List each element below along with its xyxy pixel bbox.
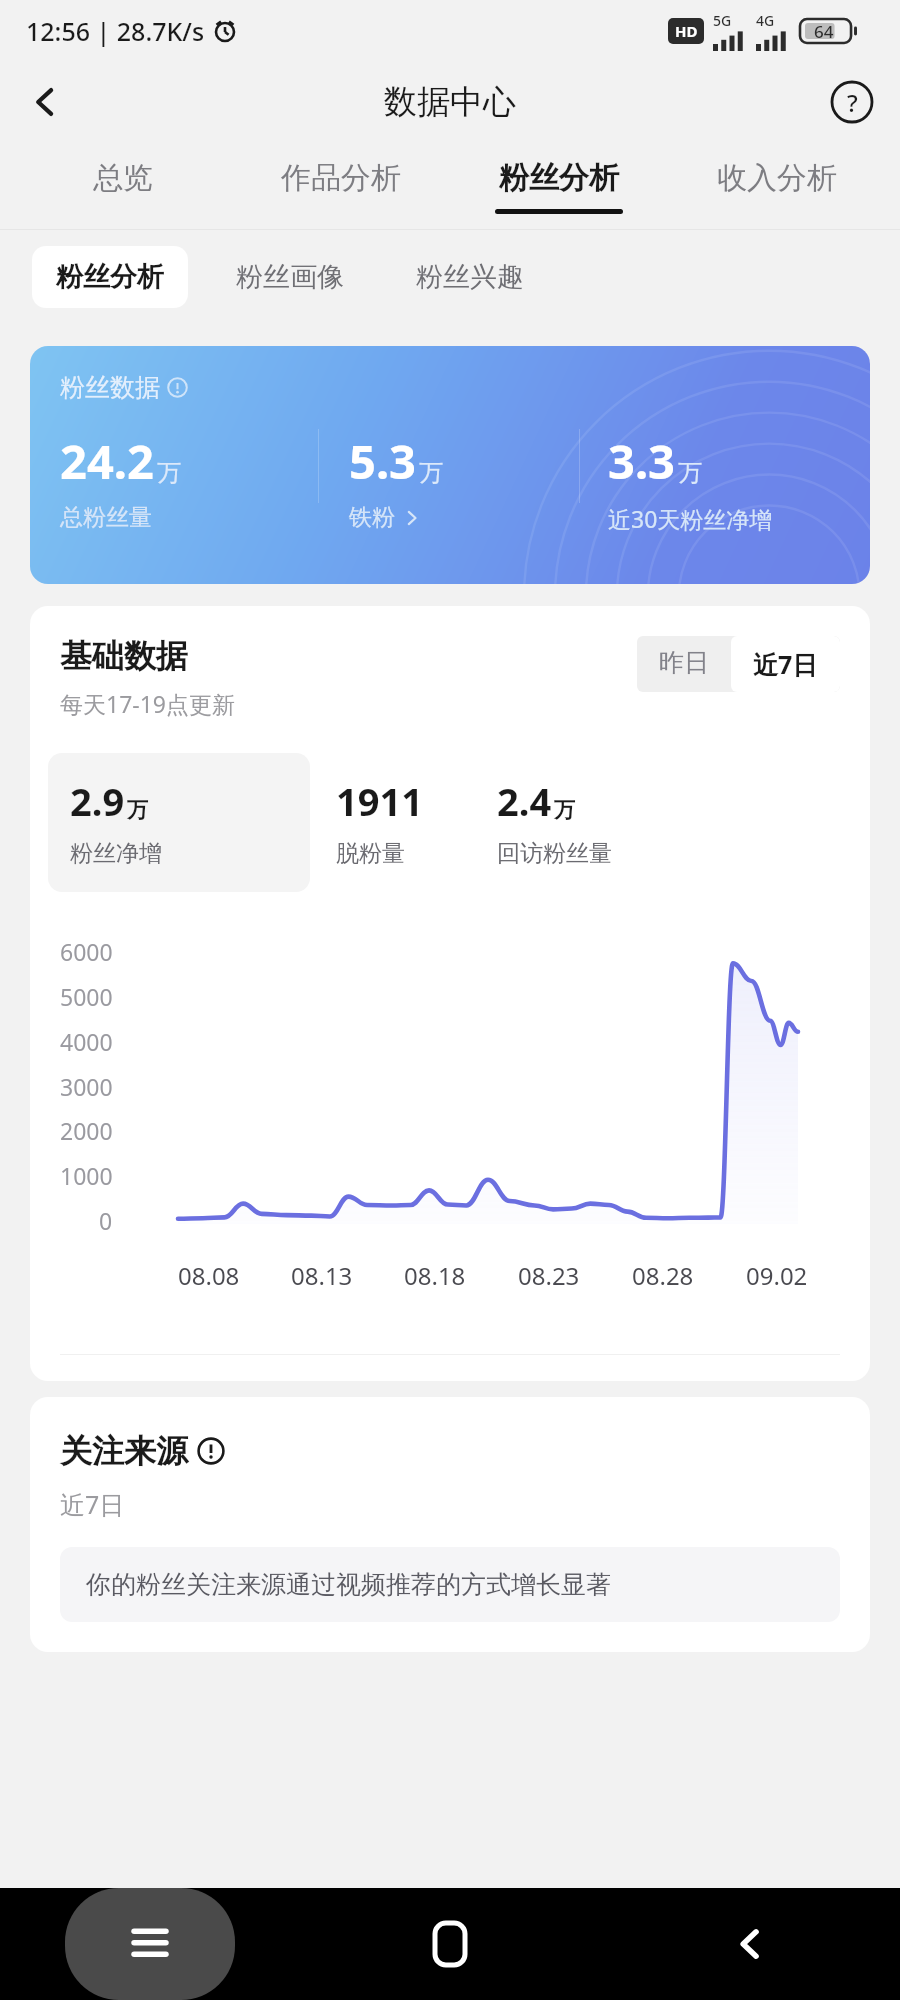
button[interactable]: Home [300, 1888, 600, 2000]
staticText: 你的粉丝关注来源通过视频推荐的方式增长显著 [86, 1569, 611, 1600]
button[interactable]: 2.9 [48, 753, 310, 892]
staticText: 4000 [60, 1026, 113, 1057]
staticText: 6000 [60, 936, 113, 967]
staticText: 5G [713, 11, 732, 30]
staticText: 近7日 [60, 1487, 125, 1521]
staticText: 08.08 [178, 1259, 240, 1292]
staticText: HD [675, 21, 698, 41]
staticText: 昨日 [659, 647, 709, 678]
staticText: 09.02 [746, 1259, 808, 1292]
staticText: 万 [127, 797, 148, 823]
staticText: 粉丝分析 [499, 159, 619, 197]
staticText: 回访粉丝量 [497, 839, 612, 868]
staticText: 数据中心 [384, 81, 516, 123]
staticText: 铁粉 [349, 503, 395, 532]
staticText: 近7日 [753, 647, 818, 681]
button[interactable]: Help [824, 74, 880, 130]
button[interactable]: 粉丝分析 [450, 142, 668, 230]
button[interactable]: Recents [65, 1888, 235, 2000]
staticText: ? [847, 86, 858, 119]
button[interactable]: 粉丝兴趣 [392, 246, 548, 308]
staticText: 2.9 [70, 775, 125, 827]
staticText: 粉丝画像 [236, 260, 344, 294]
button[interactable]: 粉丝分析 [32, 246, 188, 308]
staticText: 万 [157, 458, 181, 488]
button[interactable]: 总览 [14, 142, 232, 230]
button[interactable]: 近7日 [731, 636, 840, 692]
staticText: 作品分析 [281, 159, 401, 197]
staticText: 1000 [60, 1160, 113, 1191]
button[interactable]: Back [600, 1888, 900, 2000]
staticText: 08.18 [404, 1259, 466, 1292]
staticText: 收入分析 [717, 159, 837, 197]
button[interactable]: Back [14, 71, 76, 133]
staticText: 关注来源 [60, 1431, 188, 1471]
staticText: 5.3 [349, 429, 416, 493]
staticText: 08.13 [291, 1259, 353, 1292]
button[interactable]: 作品分析 [232, 142, 450, 230]
staticText: 3.3 [608, 429, 675, 493]
staticText: 粉丝数据 [60, 372, 160, 403]
staticText: 12:56 | 28.7K/s [26, 14, 205, 48]
staticText: 2000 [60, 1115, 113, 1146]
staticText: 脱粉量 [336, 839, 405, 868]
staticText: 万 [419, 458, 443, 488]
staticText: 3000 [60, 1071, 113, 1102]
staticText: 总粉丝量 [60, 503, 152, 532]
staticText: 24.2 [60, 429, 154, 493]
button[interactable]: 收入分析 [668, 142, 886, 230]
staticText: 粉丝净增 [70, 839, 162, 868]
staticText: 4G [756, 11, 775, 30]
staticText: 近30天粉丝净增 [608, 503, 773, 534]
staticText: 每天17-19点更新 [60, 688, 236, 719]
staticText: 基础数据 [60, 636, 188, 676]
staticText: 万 [678, 458, 702, 488]
staticText: 总览 [93, 159, 153, 197]
button[interactable]: 粉丝数据 [30, 346, 870, 584]
staticText: 08.23 [518, 1259, 580, 1292]
staticText: 粉丝分析 [56, 260, 164, 294]
staticText: 1911 [336, 775, 423, 827]
staticText: 08.28 [632, 1259, 694, 1292]
staticText: 2.4 [497, 775, 552, 827]
staticText: 64 [814, 20, 834, 43]
button[interactable]: 粉丝画像 [212, 246, 368, 308]
staticText: 粉丝兴趣 [416, 260, 524, 294]
staticText: 0 [99, 1205, 113, 1236]
button[interactable]: 昨日 [637, 636, 731, 689]
staticText: 5000 [60, 981, 113, 1012]
staticText: 万 [554, 797, 575, 823]
